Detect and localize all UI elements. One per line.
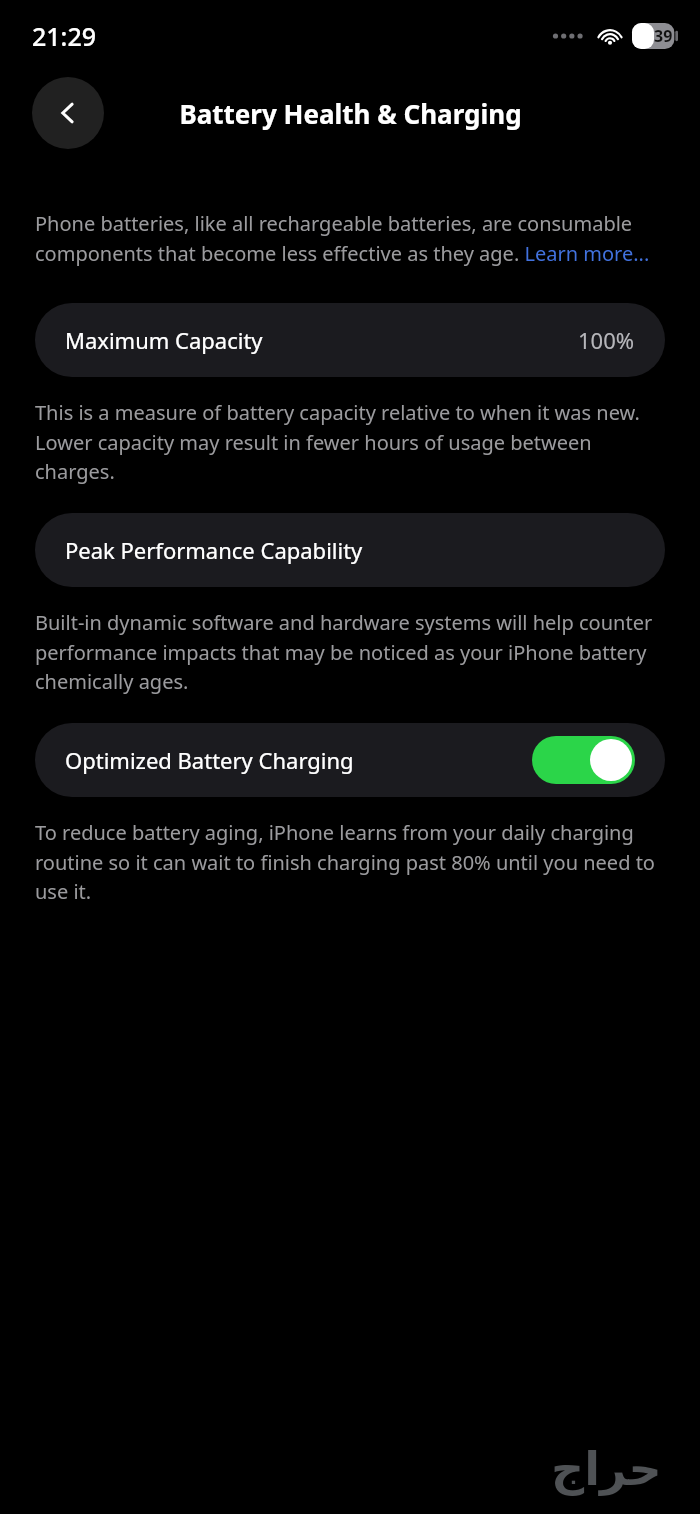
staticText: Phone batteries, like all rechargeable b… xyxy=(35,210,665,267)
staticText: To reduce battery aging, iPhone learns f… xyxy=(35,819,665,905)
button[interactable]: Optimized Battery Charging toggle, on xyxy=(532,736,635,784)
button[interactable]: Maximum Capacity xyxy=(35,303,665,377)
staticText: This is a measure of battery capacity re… xyxy=(35,399,665,485)
staticText: Built-in dynamic software and hardware s… xyxy=(35,609,665,695)
staticText: Optimized Battery Charging xyxy=(65,745,532,775)
button[interactable]: Optimized Battery Charging xyxy=(35,723,665,797)
staticText: Maximum Capacity xyxy=(65,325,578,355)
button[interactable]: Peak Performance Capability xyxy=(35,513,665,587)
staticText: 100% xyxy=(578,325,635,355)
staticText: Peak Performance Capability xyxy=(65,535,635,565)
staticText: 39 xyxy=(654,25,673,47)
staticText: 21:29 xyxy=(32,19,97,53)
staticText: Battery Health & Charging xyxy=(179,96,522,131)
staticText: حراج xyxy=(551,1442,662,1496)
button[interactable]: Back xyxy=(32,77,104,149)
